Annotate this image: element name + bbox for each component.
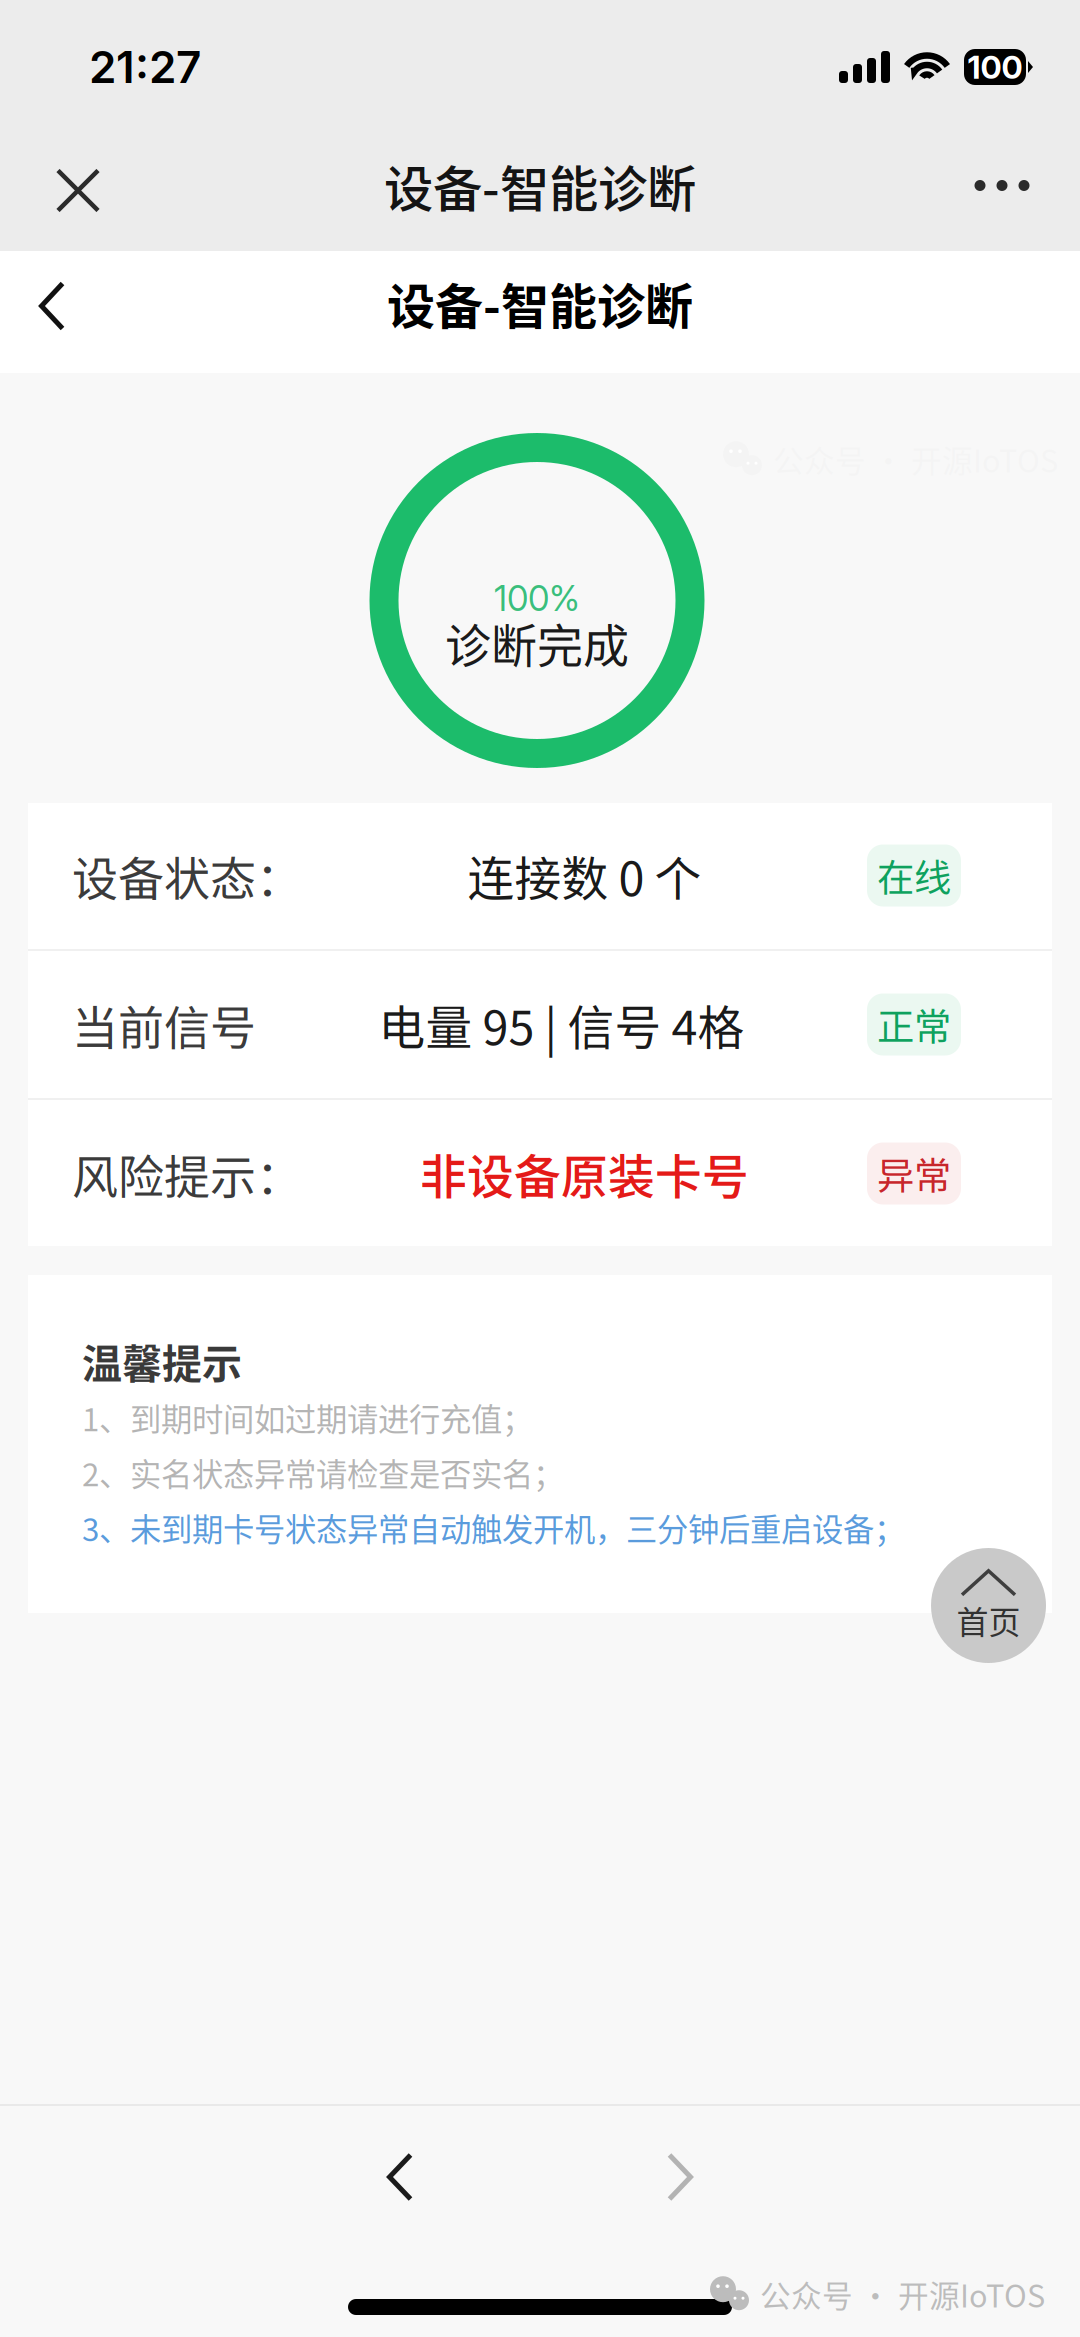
button[interactable]: 首页 [931, 1548, 1046, 1663]
staticText: 2、实名状态异常请检查是否实名； [82, 1450, 564, 1495]
staticText: 风险提示： [72, 1140, 302, 1207]
staticText: 正常 [877, 997, 951, 1052]
button[interactable]: 返回 [4, 262, 100, 362]
staticText: 1、到期时间如过期请进行充值； [82, 1395, 533, 1440]
staticText: 当前信号 [72, 991, 256, 1058]
staticText: 3、未到期卡号状态异常自动触发开机，三分钟后重启设备； [82, 1505, 905, 1550]
button[interactable]: 关闭 [26, 133, 130, 237]
button[interactable]: 下一页 [605, 2106, 755, 2248]
staticText: 首页 [956, 1597, 1020, 1643]
staticText: 连接数 0 个 [467, 842, 701, 909]
staticText: 公众号 · 开源IoTOS [760, 2272, 1045, 2316]
staticText: 电量 95 | 信号 4格 [378, 991, 744, 1058]
button[interactable]: 上一页 [325, 2106, 475, 2248]
staticText: 设备状态： [72, 842, 302, 909]
button[interactable]: 更多 [950, 133, 1054, 237]
staticText: 100% [494, 577, 580, 619]
staticText: 设备-智能诊断 [387, 268, 693, 338]
staticText: 异常 [877, 1146, 951, 1201]
staticText: 在线 [877, 848, 951, 903]
staticText: 100 [967, 48, 1022, 86]
staticText: 非设备原装卡号 [420, 1140, 749, 1207]
staticText: 21:27 [89, 40, 201, 94]
staticText: 温馨提示 [82, 1332, 242, 1390]
staticText: 设备-智能诊断 [384, 150, 696, 221]
staticText: 诊断完成 [445, 609, 629, 676]
